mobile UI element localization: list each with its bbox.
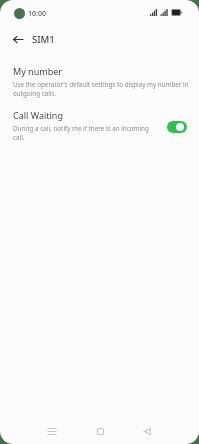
staticText: My number	[13, 65, 62, 77]
staticText: SIM1	[32, 33, 55, 46]
button[interactable]: Back	[9, 30, 27, 48]
staticText: Call Waiting	[13, 109, 63, 121]
staticText: During a call, notify me if there is an …	[13, 124, 161, 141]
button[interactable]: Home	[86, 417, 114, 444]
button[interactable]: Call Waiting	[0, 105, 199, 146]
button[interactable]: Back	[133, 417, 161, 444]
staticText: Use the operator's default settings to d…	[13, 80, 192, 97]
staticText: 10:00	[28, 9, 46, 19]
button[interactable]: My number	[0, 61, 199, 102]
button[interactable]: Call waiting toggle	[167, 121, 187, 133]
button[interactable]: Recent apps	[38, 417, 66, 444]
